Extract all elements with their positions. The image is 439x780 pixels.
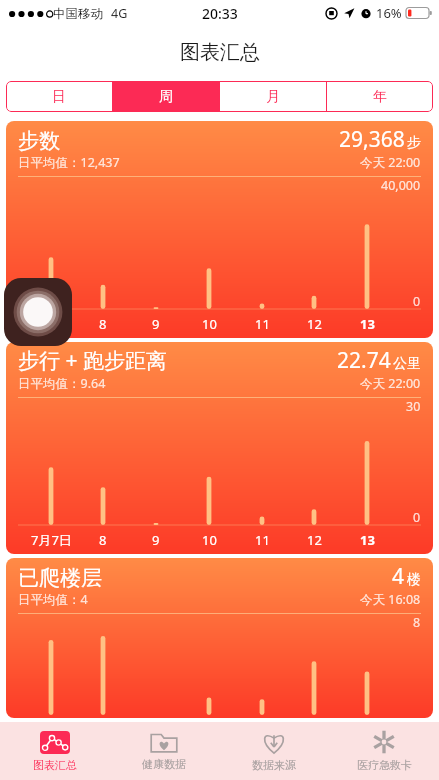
staticText: 医疗急救卡 xyxy=(357,758,412,772)
button[interactable]: 数据来源 xyxy=(219,722,329,780)
staticText: 楼 xyxy=(407,571,421,589)
staticText: 公里 xyxy=(393,355,421,373)
staticText: 40,000 xyxy=(381,177,421,194)
staticText: 9 xyxy=(152,531,160,549)
other: 图表汇总 xyxy=(40,731,70,754)
staticText: 数据来源 xyxy=(252,758,296,772)
staticText: 图表汇总 xyxy=(180,40,260,65)
other: 健康数据 xyxy=(150,731,178,753)
staticText: 今天 22:00 xyxy=(360,375,421,392)
button[interactable]: 日 xyxy=(6,81,112,112)
button[interactable]: 周 xyxy=(112,81,219,112)
staticText: 日平均值：9.64 xyxy=(18,375,106,392)
staticText: 健康数据 xyxy=(142,757,186,771)
staticText: 13 xyxy=(360,531,375,549)
staticText: 步行 + 跑步距离 xyxy=(18,346,167,375)
staticText: 日平均值：12,437 xyxy=(18,154,120,171)
staticText: 11 xyxy=(255,531,270,549)
staticText: 10 xyxy=(202,315,217,333)
staticText: 20:33 xyxy=(202,4,238,23)
staticText: 30 xyxy=(406,398,421,415)
staticText: 日平均值：4 xyxy=(18,591,88,608)
button[interactable]: 健康数据 xyxy=(109,722,219,780)
staticText: 16% xyxy=(376,4,402,22)
staticText: 12 xyxy=(307,315,322,333)
other: 医疗急救卡 xyxy=(372,730,396,754)
staticText: 8 xyxy=(413,614,421,631)
button[interactable]: 图表汇总 xyxy=(0,722,109,780)
staticText: 今天 22:00 xyxy=(360,154,421,171)
staticText: 13 xyxy=(360,315,375,333)
staticText: 11 xyxy=(255,315,270,333)
staticText: 12 xyxy=(307,531,322,549)
staticText: 9 xyxy=(152,315,160,333)
button[interactable]: 步行 + 跑步距离 xyxy=(6,342,433,554)
staticText: 10 xyxy=(202,531,217,549)
staticText: 4 xyxy=(392,562,405,591)
staticText: 月 xyxy=(266,88,280,106)
button[interactable]: 已爬楼层 xyxy=(6,558,433,718)
staticText: 中国移动 xyxy=(53,6,103,22)
staticText: 图表汇总 xyxy=(33,758,77,772)
button[interactable]: 步数 xyxy=(6,121,433,338)
staticText: 已爬楼层 xyxy=(18,565,102,591)
other: 数据来源 xyxy=(261,731,287,754)
staticText: 8 xyxy=(99,315,107,333)
staticText: 22.74 xyxy=(337,346,391,375)
button[interactable]: 医疗急救卡 xyxy=(329,722,439,780)
staticText: 日 xyxy=(52,88,66,106)
staticText: 7月7日 xyxy=(31,531,72,549)
button[interactable]: 月 xyxy=(219,81,326,112)
button[interactable]: AssistiveTouch xyxy=(4,278,72,346)
staticText: 今天 16:08 xyxy=(360,591,421,608)
button[interactable]: 年 xyxy=(326,81,433,112)
staticText: 29,368 xyxy=(339,125,405,154)
staticText: 0 xyxy=(413,293,421,310)
staticText: 0 xyxy=(413,509,421,526)
staticText: 步数 xyxy=(18,128,60,154)
staticText: 周 xyxy=(159,88,173,106)
staticText: 步 xyxy=(407,134,421,152)
staticText: 4G xyxy=(111,5,128,22)
staticText: 年 xyxy=(373,88,387,106)
staticText: 8 xyxy=(99,531,107,549)
